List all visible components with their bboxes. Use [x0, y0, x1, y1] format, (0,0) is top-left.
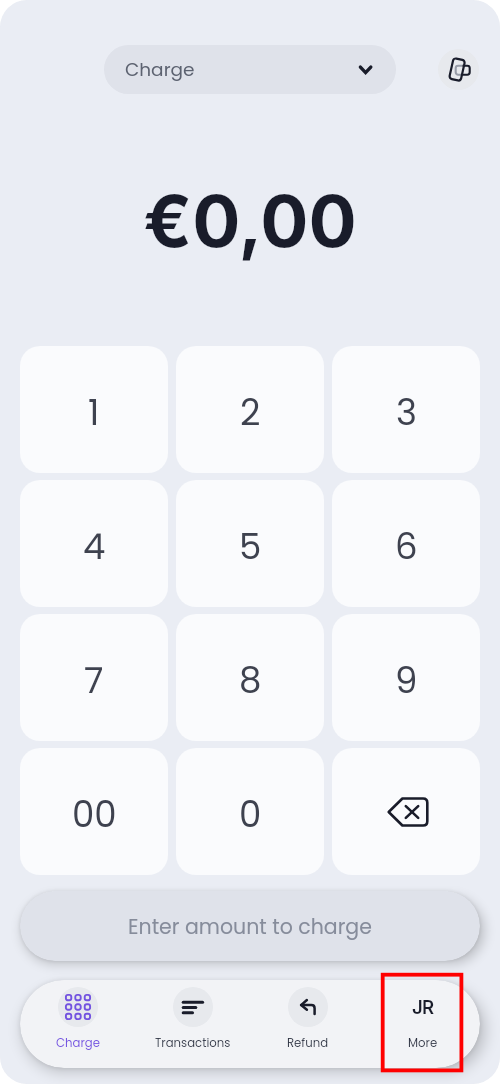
staticText: 0	[239, 790, 262, 840]
staticText: JR	[412, 996, 434, 1019]
staticText: 2	[240, 388, 261, 438]
staticText: 9	[395, 656, 418, 706]
button[interactable]: Charge	[20, 980, 135, 1068]
button[interactable]: 4	[20, 480, 168, 607]
staticText: Charge	[56, 1035, 100, 1051]
button[interactable]: 7	[20, 614, 168, 741]
staticText: 7	[84, 656, 104, 706]
button[interactable]: 5	[176, 480, 324, 607]
button[interactable]: 1	[20, 346, 168, 473]
staticText: 00	[72, 790, 117, 840]
button[interactable]: 00	[20, 748, 168, 875]
button[interactable]: 0	[176, 748, 324, 875]
button[interactable]: 6	[332, 480, 480, 607]
staticText: 3	[396, 388, 417, 438]
staticText: 5	[239, 522, 262, 572]
staticText: More	[408, 1035, 438, 1051]
button[interactable]: JR	[365, 980, 480, 1068]
button[interactable]: Enter amount to charge	[20, 891, 480, 961]
button[interactable]: 8	[176, 614, 324, 741]
button[interactable]: Transactions	[135, 980, 250, 1068]
button[interactable]: 9	[332, 614, 480, 741]
staticText: 4	[83, 522, 106, 572]
staticText: 1	[88, 388, 100, 438]
button[interactable]: Refund	[250, 980, 365, 1068]
staticText: €0,00	[143, 178, 357, 265]
staticText: Transactions	[155, 1035, 231, 1051]
button[interactable]: 2	[176, 346, 324, 473]
staticText: Enter amount to charge	[128, 912, 372, 941]
button[interactable]: Backspace	[332, 748, 480, 875]
staticText: 6	[395, 522, 418, 572]
button[interactable]: 3	[332, 346, 480, 473]
button[interactable]: Tap to pay	[438, 49, 479, 90]
button[interactable]: Charge	[104, 45, 396, 94]
staticText: Refund	[287, 1035, 329, 1051]
staticText: Charge	[125, 57, 195, 83]
staticText: 8	[239, 656, 262, 706]
